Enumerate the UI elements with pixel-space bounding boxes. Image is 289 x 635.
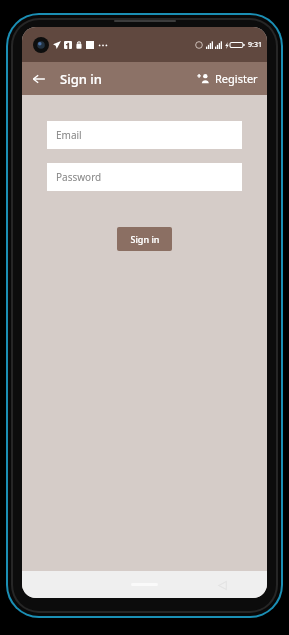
- staticText: Sign in: [60, 70, 102, 88]
- button[interactable]: Back: [215, 578, 229, 592]
- staticText: Register: [215, 71, 258, 86]
- button[interactable]: Email: [47, 121, 242, 149]
- button[interactable]: Back: [22, 62, 55, 95]
- staticText: Email: [56, 128, 82, 142]
- staticText: Sign in: [130, 233, 160, 245]
- staticText: Password: [56, 170, 102, 184]
- button[interactable]: Password: [47, 163, 242, 191]
- button[interactable]: Sign in: [117, 227, 172, 251]
- staticText: 9:31: [248, 40, 262, 50]
- button[interactable]: Register: [188, 62, 267, 95]
